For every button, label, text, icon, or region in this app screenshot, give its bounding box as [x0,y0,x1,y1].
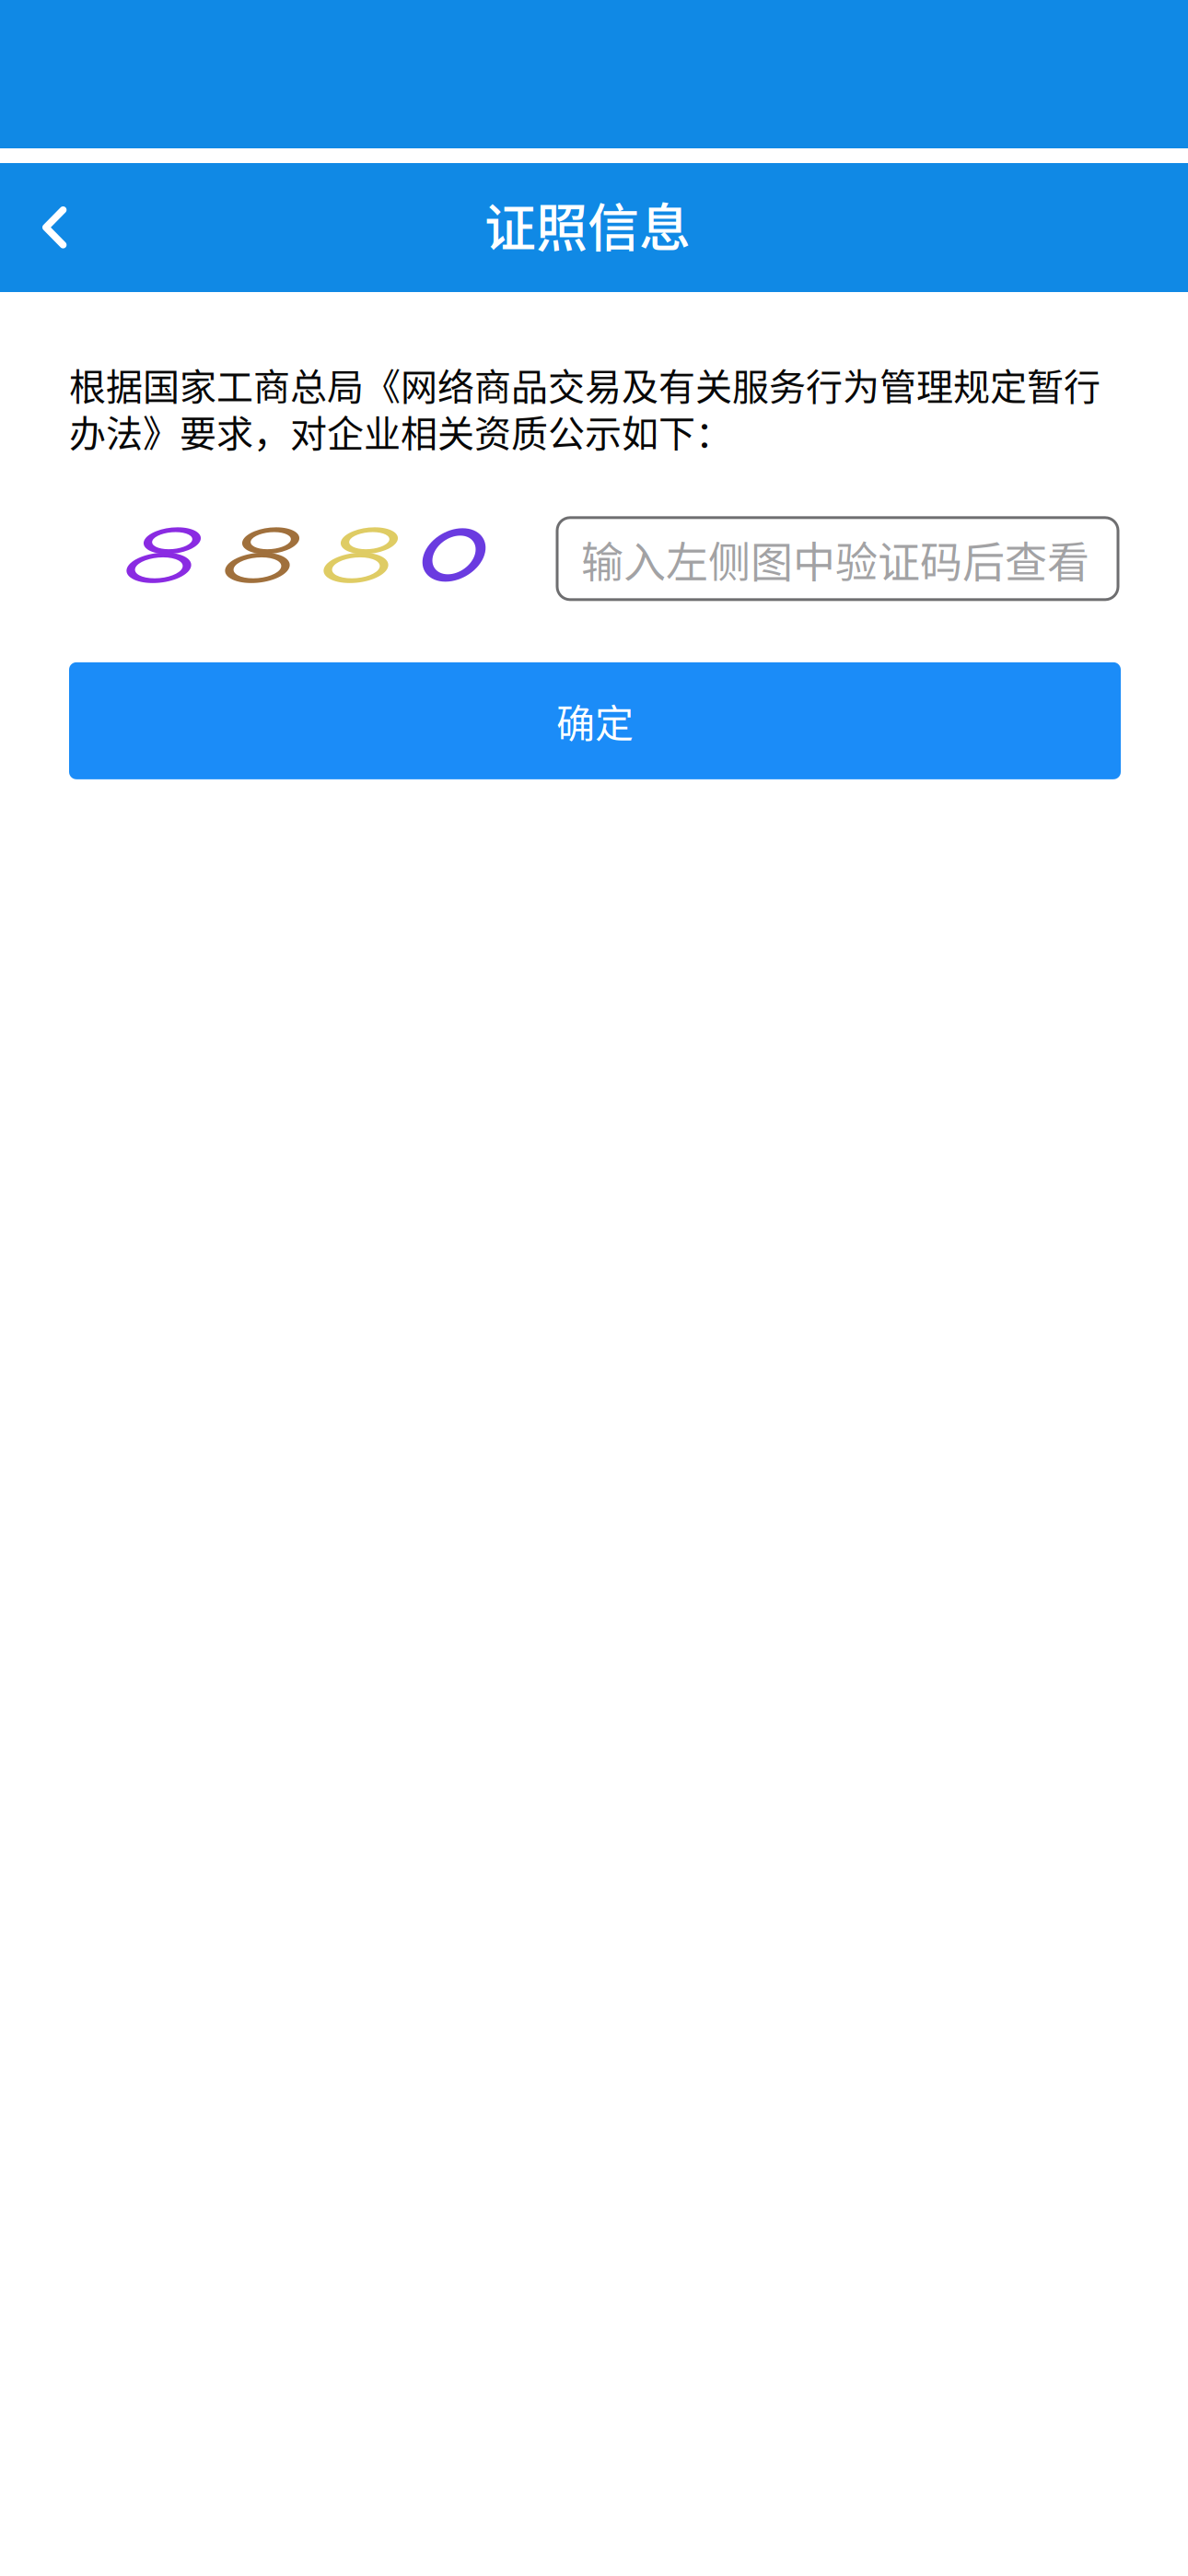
button[interactable]: 确定 [69,662,1121,779]
staticText: 根据国家工商总局《网络商品交易及有关服务行为管理规定暂行办法》要求，对企业相关资… [69,357,1101,458]
staticText: 输入左侧图中验证码后查看 [581,528,1089,589]
button[interactable]: 验证码图片，点击刷新 [69,518,557,600]
staticText: 证照信息 [484,187,691,261]
button[interactable]: 返回 [0,163,138,292]
staticText: 确定 [556,693,634,749]
button[interactable]: 输入左侧图中验证码后查看 [557,518,1118,600]
